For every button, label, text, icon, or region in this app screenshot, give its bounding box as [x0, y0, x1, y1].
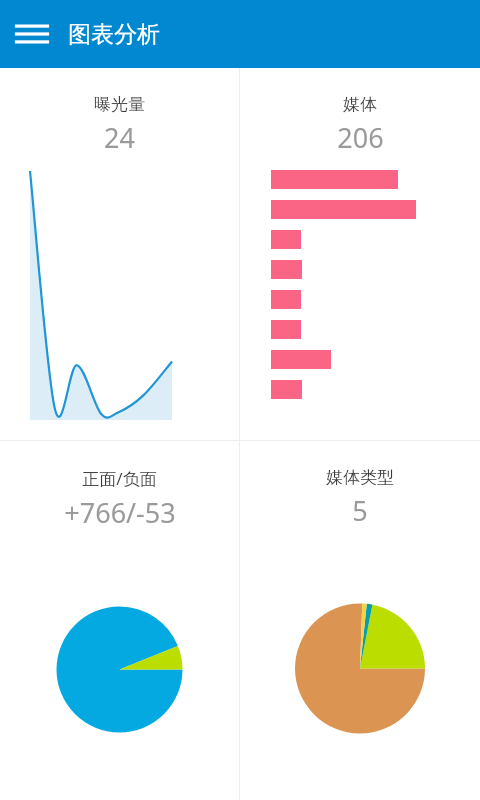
staticText: 曝光量: [94, 94, 145, 115]
staticText: 正面/负面: [82, 467, 157, 490]
staticText: 206: [337, 119, 384, 156]
staticText: +766/-53: [64, 494, 176, 531]
staticText: 媒体类型: [326, 467, 394, 488]
button[interactable]: Menu: [8, 10, 56, 58]
button[interactable]: 媒体类型: [240, 441, 480, 800]
button[interactable]: 正面/负面: [0, 441, 239, 800]
staticText: 媒体: [343, 94, 377, 115]
staticText: 图表分析: [68, 20, 160, 49]
staticText: 24: [104, 119, 135, 156]
button[interactable]: 曝光量: [0, 68, 239, 440]
staticText: 5: [352, 492, 368, 529]
button[interactable]: 媒体: [240, 68, 480, 440]
